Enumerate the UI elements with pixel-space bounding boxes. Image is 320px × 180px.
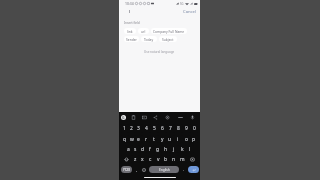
button[interactable]: 0 — [190, 124, 198, 133]
staticText: url — [141, 29, 146, 33]
button[interactable]: k — [178, 145, 186, 153]
button[interactable]: d — [139, 145, 146, 153]
button[interactable]: 2 — [128, 124, 135, 133]
button[interactable]: l — [186, 145, 194, 153]
button[interactable]: g — [154, 145, 162, 153]
staticText: j — [173, 146, 175, 153]
staticText: c — [149, 156, 152, 163]
staticText: Sender — [126, 37, 137, 41]
staticText: o — [185, 136, 188, 143]
staticText: 2 — [130, 125, 133, 132]
button[interactable]: 7 — [166, 124, 174, 133]
staticText: Insert field — [124, 21, 140, 25]
button[interactable]: Period — [181, 166, 187, 173]
staticText: Company Full Name — [153, 29, 185, 33]
button[interactable]: url — [138, 28, 149, 34]
staticText: 5 — [153, 125, 156, 132]
button[interactable]: Shift — [121, 155, 132, 163]
staticText: Subject — [162, 37, 174, 41]
button[interactable]: e — [135, 135, 142, 143]
staticText: 10:34 — [125, 1, 134, 6]
button[interactable]: o — [182, 135, 190, 143]
button[interactable]: q — [121, 135, 128, 143]
button[interactable]: link — [124, 28, 136, 34]
button[interactable]: w — [128, 135, 135, 143]
button[interactable]: 5 — [150, 124, 158, 133]
staticText: z — [134, 156, 137, 163]
button[interactable]: 4 — [142, 124, 150, 133]
staticText: u — [168, 136, 172, 143]
staticText: e — [137, 136, 140, 143]
button[interactable]: m — [178, 155, 186, 163]
button[interactable]: Today — [141, 36, 157, 42]
staticText: f — [149, 146, 151, 153]
staticText: ?123 — [123, 168, 130, 172]
button[interactable]: 1 — [121, 124, 128, 133]
button[interactable]: i — [174, 135, 182, 143]
button[interactable]: Cancel — [182, 8, 198, 16]
button[interactable]: s — [132, 145, 139, 153]
button[interactable]: More — [178, 115, 183, 120]
staticText: 7 — [169, 125, 172, 132]
button[interactable]: ?123 — [121, 166, 132, 173]
staticText: link — [127, 29, 133, 33]
staticText: 4 — [145, 125, 148, 132]
button[interactable]: n — [170, 155, 178, 163]
staticText: 9 — [185, 125, 188, 132]
button[interactable]: Clipboard — [131, 115, 136, 120]
button[interactable]: Company Full Name — [151, 28, 187, 34]
button[interactable]: y — [158, 135, 166, 143]
button[interactable]: Enter — [188, 166, 199, 173]
staticText: 0 — [193, 125, 196, 132]
button[interactable]: h — [162, 145, 170, 153]
staticText: 5G — [180, 2, 184, 6]
staticText: r — [145, 136, 148, 143]
staticText: m — [180, 156, 185, 163]
button[interactable]: Subject — [159, 36, 177, 42]
button[interactable]: j — [170, 145, 178, 153]
staticText: x — [141, 156, 144, 163]
staticText: Today — [144, 37, 154, 41]
staticText: Cancel — [183, 9, 197, 15]
staticText: p — [192, 136, 196, 143]
staticText: a — [127, 146, 130, 153]
staticText: English — [159, 168, 170, 172]
staticText: 8 — [177, 125, 180, 132]
button[interactable]: Backspace — [186, 155, 198, 163]
button[interactable]: Comma — [134, 166, 140, 173]
staticText: y — [161, 136, 164, 143]
staticText: n — [172, 156, 176, 163]
button[interactable]: p — [190, 135, 198, 143]
button[interactable]: Settings — [165, 115, 170, 120]
button[interactable]: Sender — [124, 36, 139, 42]
staticText: v — [157, 156, 160, 163]
staticText: i — [177, 136, 179, 143]
button[interactable]: Share — [153, 115, 158, 120]
staticText: h — [164, 146, 168, 153]
button[interactable]: c — [146, 155, 154, 163]
button[interactable]: r — [142, 135, 150, 143]
button[interactable]: 9 — [182, 124, 190, 133]
button[interactable]: 3 — [135, 124, 142, 133]
button[interactable]: f — [146, 145, 154, 153]
button[interactable]: Emoji — [141, 166, 147, 173]
staticText: Use natural language — [144, 50, 175, 54]
staticText: s — [134, 146, 137, 153]
button[interactable]: b — [162, 155, 170, 163]
staticText: t — [153, 136, 155, 143]
staticText: 3 — [137, 125, 140, 132]
button[interactable]: English — [149, 166, 179, 173]
button[interactable]: Voice input — [190, 115, 195, 120]
button[interactable]: 8 — [174, 124, 182, 133]
button[interactable]: Stickers — [142, 115, 147, 120]
button[interactable]: v — [154, 155, 162, 163]
button[interactable]: x — [139, 155, 146, 163]
button[interactable]: Google search — [121, 115, 126, 120]
staticText: g — [156, 146, 160, 153]
button[interactable]: 6 — [158, 124, 166, 133]
button[interactable]: a — [125, 145, 132, 153]
button[interactable]: u — [166, 135, 174, 143]
button[interactable]: t — [150, 135, 158, 143]
staticText: 1 — [123, 125, 126, 132]
button[interactable]: z — [132, 155, 139, 163]
